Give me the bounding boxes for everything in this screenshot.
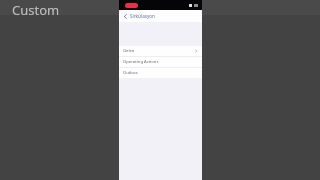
staticText: Sirkülasyon xyxy=(130,13,155,19)
button[interactable]: Operating Actions xyxy=(119,57,202,67)
button[interactable]: Outbox xyxy=(119,68,202,78)
staticText: Operating Actions xyxy=(123,59,198,65)
button[interactable]: Gelen xyxy=(119,46,202,56)
button[interactable]: Back xyxy=(119,10,202,22)
other: Back xyxy=(123,14,128,19)
staticText: Outbox xyxy=(123,70,198,76)
staticText: Gelen xyxy=(123,48,194,54)
staticText: Custom xyxy=(12,1,60,19)
